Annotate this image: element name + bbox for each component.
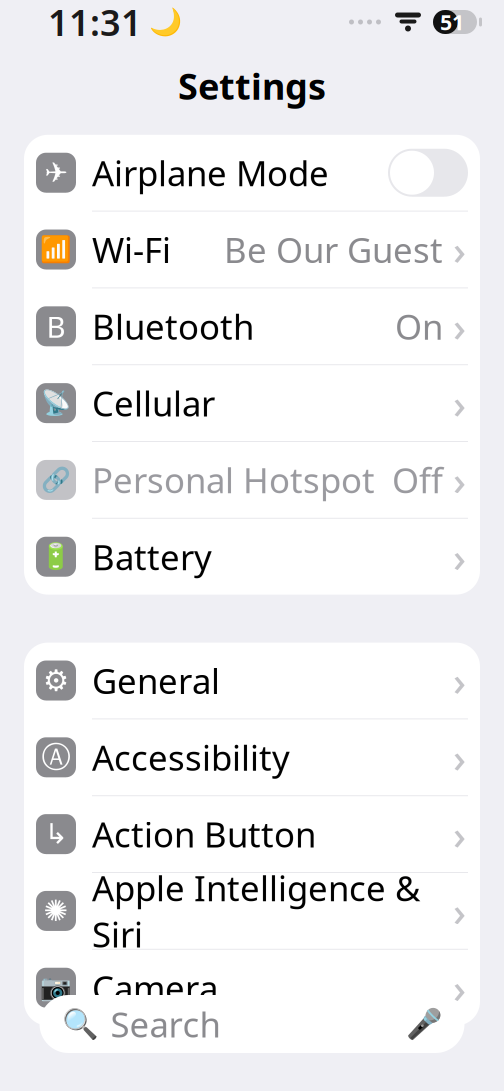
staticText: Airplane Mode	[92, 150, 329, 196]
button[interactable]: 🔋	[24, 519, 480, 595]
staticText: ›	[453, 807, 466, 861]
staticText: Be Our Guest	[224, 226, 443, 272]
button[interactable]: Ⓐ	[24, 719, 480, 795]
staticText: General	[92, 657, 220, 703]
staticText: On	[395, 303, 443, 349]
staticText: ›	[453, 731, 466, 784]
button[interactable]: 📡	[24, 365, 480, 441]
staticText: 11:31	[48, 0, 142, 46]
staticText: Settings	[178, 62, 326, 110]
button[interactable]: ⚙	[24, 643, 480, 718]
button[interactable]: ✺	[24, 873, 480, 949]
staticText: Off	[392, 457, 443, 503]
staticText: 📷	[40, 973, 72, 1002]
staticText: ›	[453, 376, 466, 430]
staticText: ✺	[43, 894, 68, 928]
staticText: 🔋	[40, 542, 72, 571]
staticText: 🌙	[149, 7, 182, 37]
staticText: ›	[453, 961, 466, 1014]
button[interactable]: B	[24, 288, 480, 364]
staticText: Ⓐ	[41, 739, 70, 775]
staticText: ›	[453, 453, 466, 506]
staticText: Wi-Fi	[92, 226, 171, 272]
staticText: ›	[453, 300, 466, 353]
staticText: ›	[453, 530, 466, 583]
staticText: ⚙	[43, 664, 69, 697]
staticText: Accessibility	[92, 734, 290, 780]
staticText: 51	[440, 8, 464, 36]
staticText: 📶	[40, 235, 72, 264]
staticText: 🔗	[41, 466, 71, 494]
staticText: 📡	[41, 389, 71, 417]
staticText: ›	[453, 884, 466, 937]
staticText: Battery	[92, 534, 212, 580]
button[interactable]: 📶	[24, 212, 480, 287]
staticText: Search	[110, 1001, 220, 1047]
staticText: ✈	[44, 157, 67, 189]
staticText: Cellular	[92, 380, 215, 426]
staticText: Action Button	[92, 811, 316, 857]
staticText: 🎤	[405, 1007, 442, 1041]
staticText: Apple Intelligence & Siri	[92, 865, 420, 957]
staticText: Camera	[92, 965, 218, 1011]
staticText: Personal Hotspot	[92, 457, 375, 503]
staticText: ↳	[44, 818, 67, 850]
staticText: ›	[453, 654, 466, 707]
staticText: ›	[453, 223, 466, 276]
button[interactable]: 🔗	[24, 442, 480, 518]
button[interactable]: ✈	[24, 135, 480, 211]
button[interactable]: 📷	[24, 950, 480, 1026]
button[interactable]: 🔍	[39, 995, 464, 1053]
button[interactable]: ↳	[24, 796, 480, 872]
staticText: Bluetooth	[92, 303, 254, 349]
staticText: B	[46, 307, 65, 346]
staticText: 🔍	[61, 1007, 98, 1041]
